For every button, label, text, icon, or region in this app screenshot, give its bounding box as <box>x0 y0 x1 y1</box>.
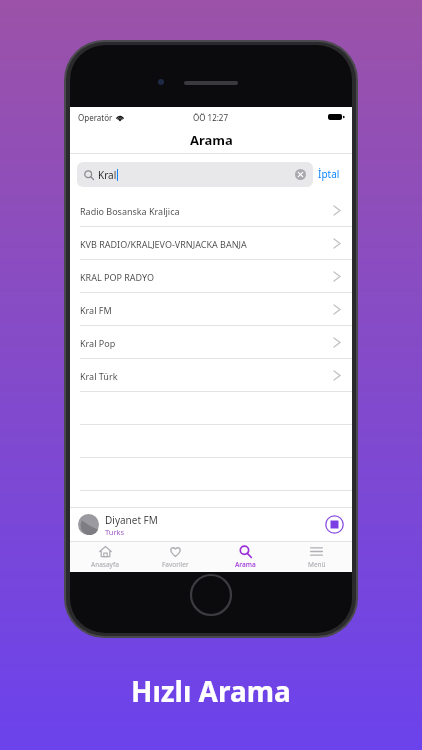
button[interactable]: KRAL POP RADYO <box>70 260 352 293</box>
button[interactable]: İptal <box>313 163 345 185</box>
staticText: ÖÖ 12:27 <box>193 112 229 123</box>
staticText: Kral Pop <box>80 337 116 349</box>
button[interactable]: Favoriler <box>140 542 210 572</box>
button[interactable]: Kral Türk <box>70 359 352 392</box>
staticText: Radio Bosanska Kraljica <box>80 205 180 217</box>
staticText: Menü <box>308 560 326 569</box>
button[interactable]: Menü <box>281 542 352 572</box>
staticText: Arama <box>235 560 256 569</box>
staticText: Diyanet FM <box>105 513 158 527</box>
staticText: Anasayfa <box>91 560 119 569</box>
button[interactable]: Kral Pop <box>70 326 352 359</box>
staticText: Kral FM <box>80 304 112 316</box>
staticText: Turks <box>105 527 125 537</box>
button[interactable]: Diyanet FM <box>70 508 352 541</box>
button[interactable]: Kral <box>77 162 313 187</box>
staticText: KVB RADIO/KRALJEVO-VRNJACKA BANJA <box>80 238 247 250</box>
button[interactable]: Arama <box>210 542 281 572</box>
button[interactable]: KVB RADIO/KRALJEVO-VRNJACKA BANJA <box>70 227 352 260</box>
button[interactable]: Anasayfa <box>70 542 140 572</box>
button[interactable]: Clear <box>295 169 306 180</box>
button[interactable]: Kral FM <box>70 293 352 326</box>
staticText: Arama <box>190 131 233 149</box>
staticText: Kral <box>98 168 117 182</box>
staticText: Operatör <box>78 112 113 123</box>
staticText: Favoriler <box>162 560 189 569</box>
staticText: Kral Türk <box>80 370 118 382</box>
staticText: KRAL POP RADYO <box>80 271 155 283</box>
staticText: İptal <box>318 167 340 181</box>
staticText: Hızlı Arama <box>131 672 291 710</box>
button[interactable]: Radio Bosanska Kraljica <box>70 194 352 227</box>
button[interactable]: Stop <box>325 515 344 534</box>
